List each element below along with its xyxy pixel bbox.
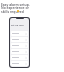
button[interactable]: [11, 43, 28, 48]
staticText: Set Up Your Plan: [11, 24, 28, 27]
button[interactable]: [11, 37, 28, 42]
button[interactable]: [11, 49, 28, 54]
button[interactable]: [11, 31, 28, 36]
button[interactable]: [11, 55, 28, 60]
staticText: Easy alarm setup. No experience or skill…: [1, 2, 31, 14]
button[interactable]: [11, 61, 28, 66]
